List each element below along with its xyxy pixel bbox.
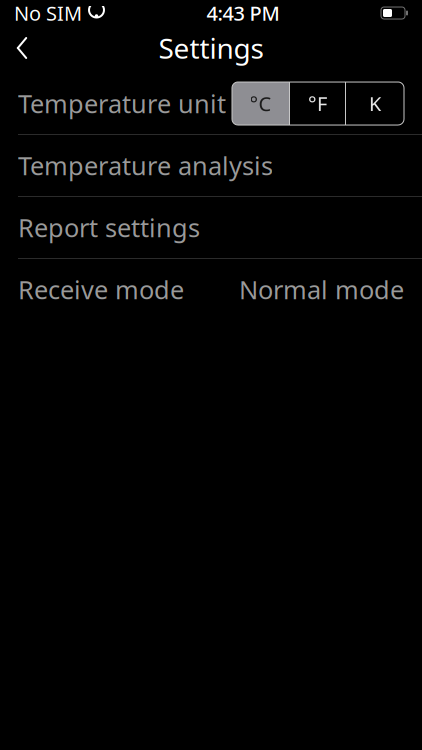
button[interactable]: Temperature unit [0,73,422,134]
staticText: K [369,90,381,117]
button[interactable]: °C [232,82,289,125]
staticText: Normal mode [239,273,404,306]
button[interactable]: Report settings [0,197,422,258]
button[interactable]: Temperature analysis [0,135,422,196]
staticText: °F [308,90,327,117]
button[interactable]: °F [289,82,346,125]
staticText: 4:43 PM [206,0,279,26]
button[interactable]: Back [0,26,44,70]
staticText: No SIM [14,0,82,26]
button[interactable]: K [346,82,404,125]
staticText: Report settings [18,211,200,244]
staticText: °C [249,90,271,117]
button[interactable]: Receive mode [0,259,422,320]
staticText: Temperature analysis [18,149,273,182]
staticText: Settings [158,29,263,67]
staticText: Receive mode [18,273,184,306]
staticText: Temperature unit [18,87,226,120]
